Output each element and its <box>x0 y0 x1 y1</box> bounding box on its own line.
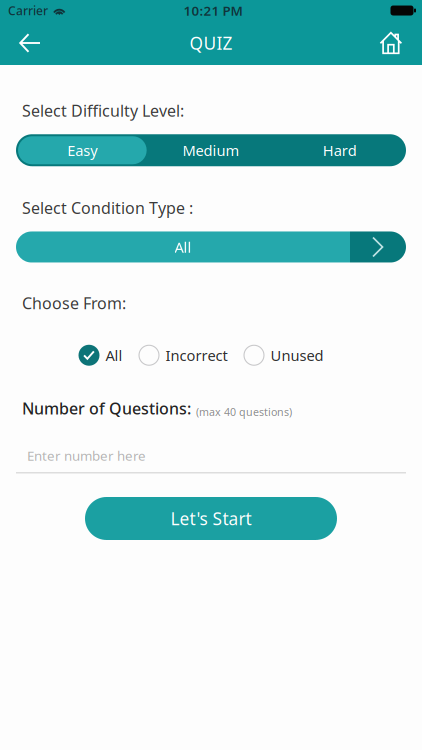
staticText: Number of Questions: <box>22 398 191 419</box>
button[interactable]: Easy <box>18 136 147 164</box>
staticText: Let's Start <box>170 507 251 530</box>
staticText: Choose From: <box>22 292 126 314</box>
staticText: Select Condition Type : <box>22 197 193 218</box>
staticText: QUIZ <box>189 31 232 54</box>
button[interactable]: Back <box>4 21 56 65</box>
staticText: (max 40 questions) <box>196 405 292 419</box>
staticText: Medium <box>182 140 239 160</box>
staticText: Easy <box>67 140 97 160</box>
staticText: Enter number here <box>27 447 146 464</box>
button[interactable]: Medium <box>147 136 275 164</box>
staticText: 10:21 PM <box>183 2 242 19</box>
button[interactable]: Let's Start <box>85 497 337 540</box>
staticText: Hard <box>323 140 357 160</box>
button[interactable]: Incorrect <box>138 345 227 366</box>
button[interactable]: All <box>16 231 406 262</box>
button[interactable]: Unused <box>243 345 323 366</box>
button[interactable]: Home <box>365 21 417 65</box>
staticText: All <box>174 237 191 257</box>
staticText: Incorrect <box>165 345 227 365</box>
button[interactable]: Hard <box>275 136 404 164</box>
staticText: All <box>105 345 122 365</box>
staticText: Carrier <box>8 2 48 18</box>
staticText: Select Difficulty Level: <box>22 100 184 121</box>
staticText: Unused <box>270 345 323 365</box>
button[interactable]: All <box>78 345 122 366</box>
